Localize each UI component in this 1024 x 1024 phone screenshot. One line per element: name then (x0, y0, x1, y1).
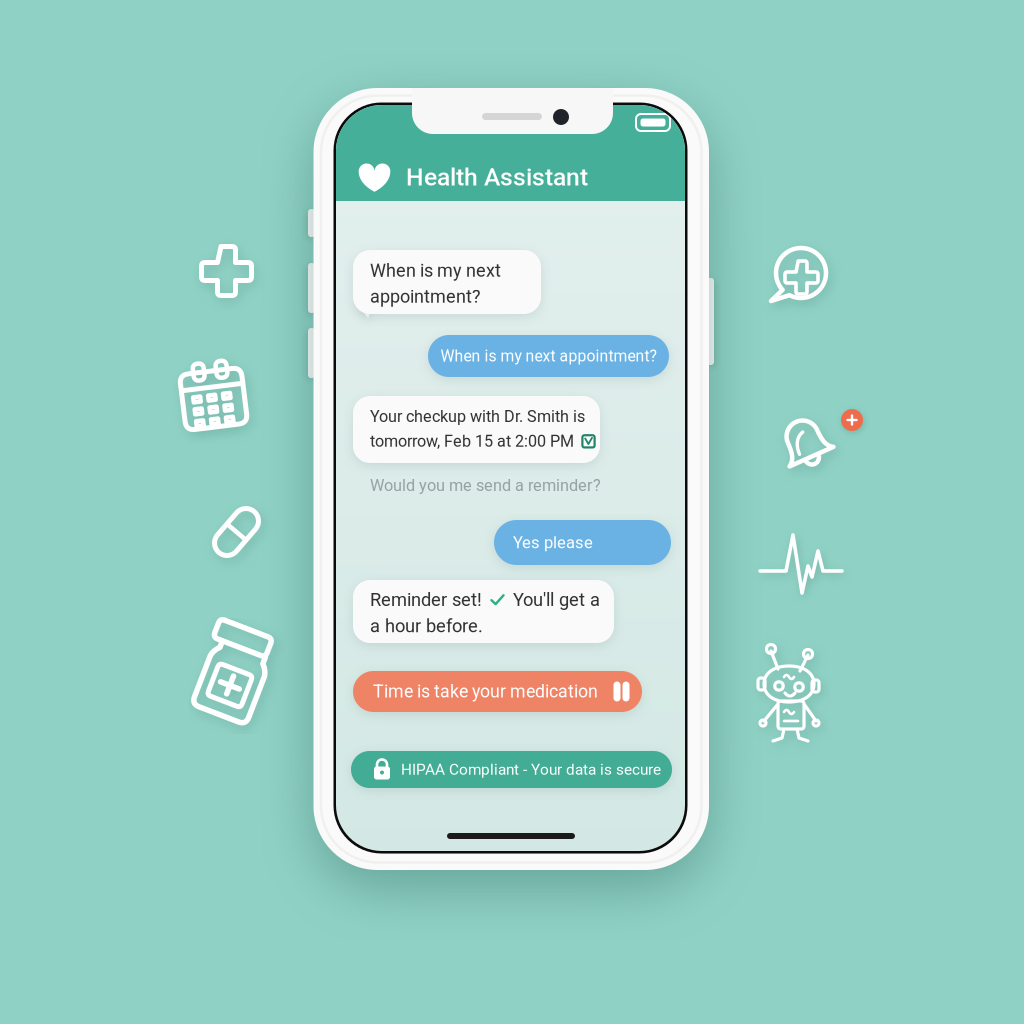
staticText: appointment? (370, 286, 481, 307)
button[interactable]: Health Assistant (358, 157, 668, 197)
staticText: HIPAA Compliant - Your data is secure (401, 760, 661, 778)
staticText: When is my next (370, 260, 501, 281)
staticText: Reminder set! (370, 589, 482, 610)
staticText: tomorrow, Feb 15 at 2:00 PM (370, 432, 574, 451)
staticText: Health Assistant (406, 162, 588, 191)
button[interactable]: Time is take your medication (353, 671, 642, 712)
staticText: You'll get a (513, 589, 600, 610)
staticText: a hour before. (370, 615, 483, 637)
staticText: When is my next appointment? (440, 347, 656, 365)
staticText: Would you me send a reminder? (370, 476, 601, 495)
button[interactable]: HIPAA Compliant - Your data is secure (351, 751, 672, 788)
staticText: Your checkup with Dr. Smith is (370, 407, 585, 426)
staticText: Time is take your medication (373, 681, 598, 702)
staticText: Yes please (513, 533, 593, 552)
